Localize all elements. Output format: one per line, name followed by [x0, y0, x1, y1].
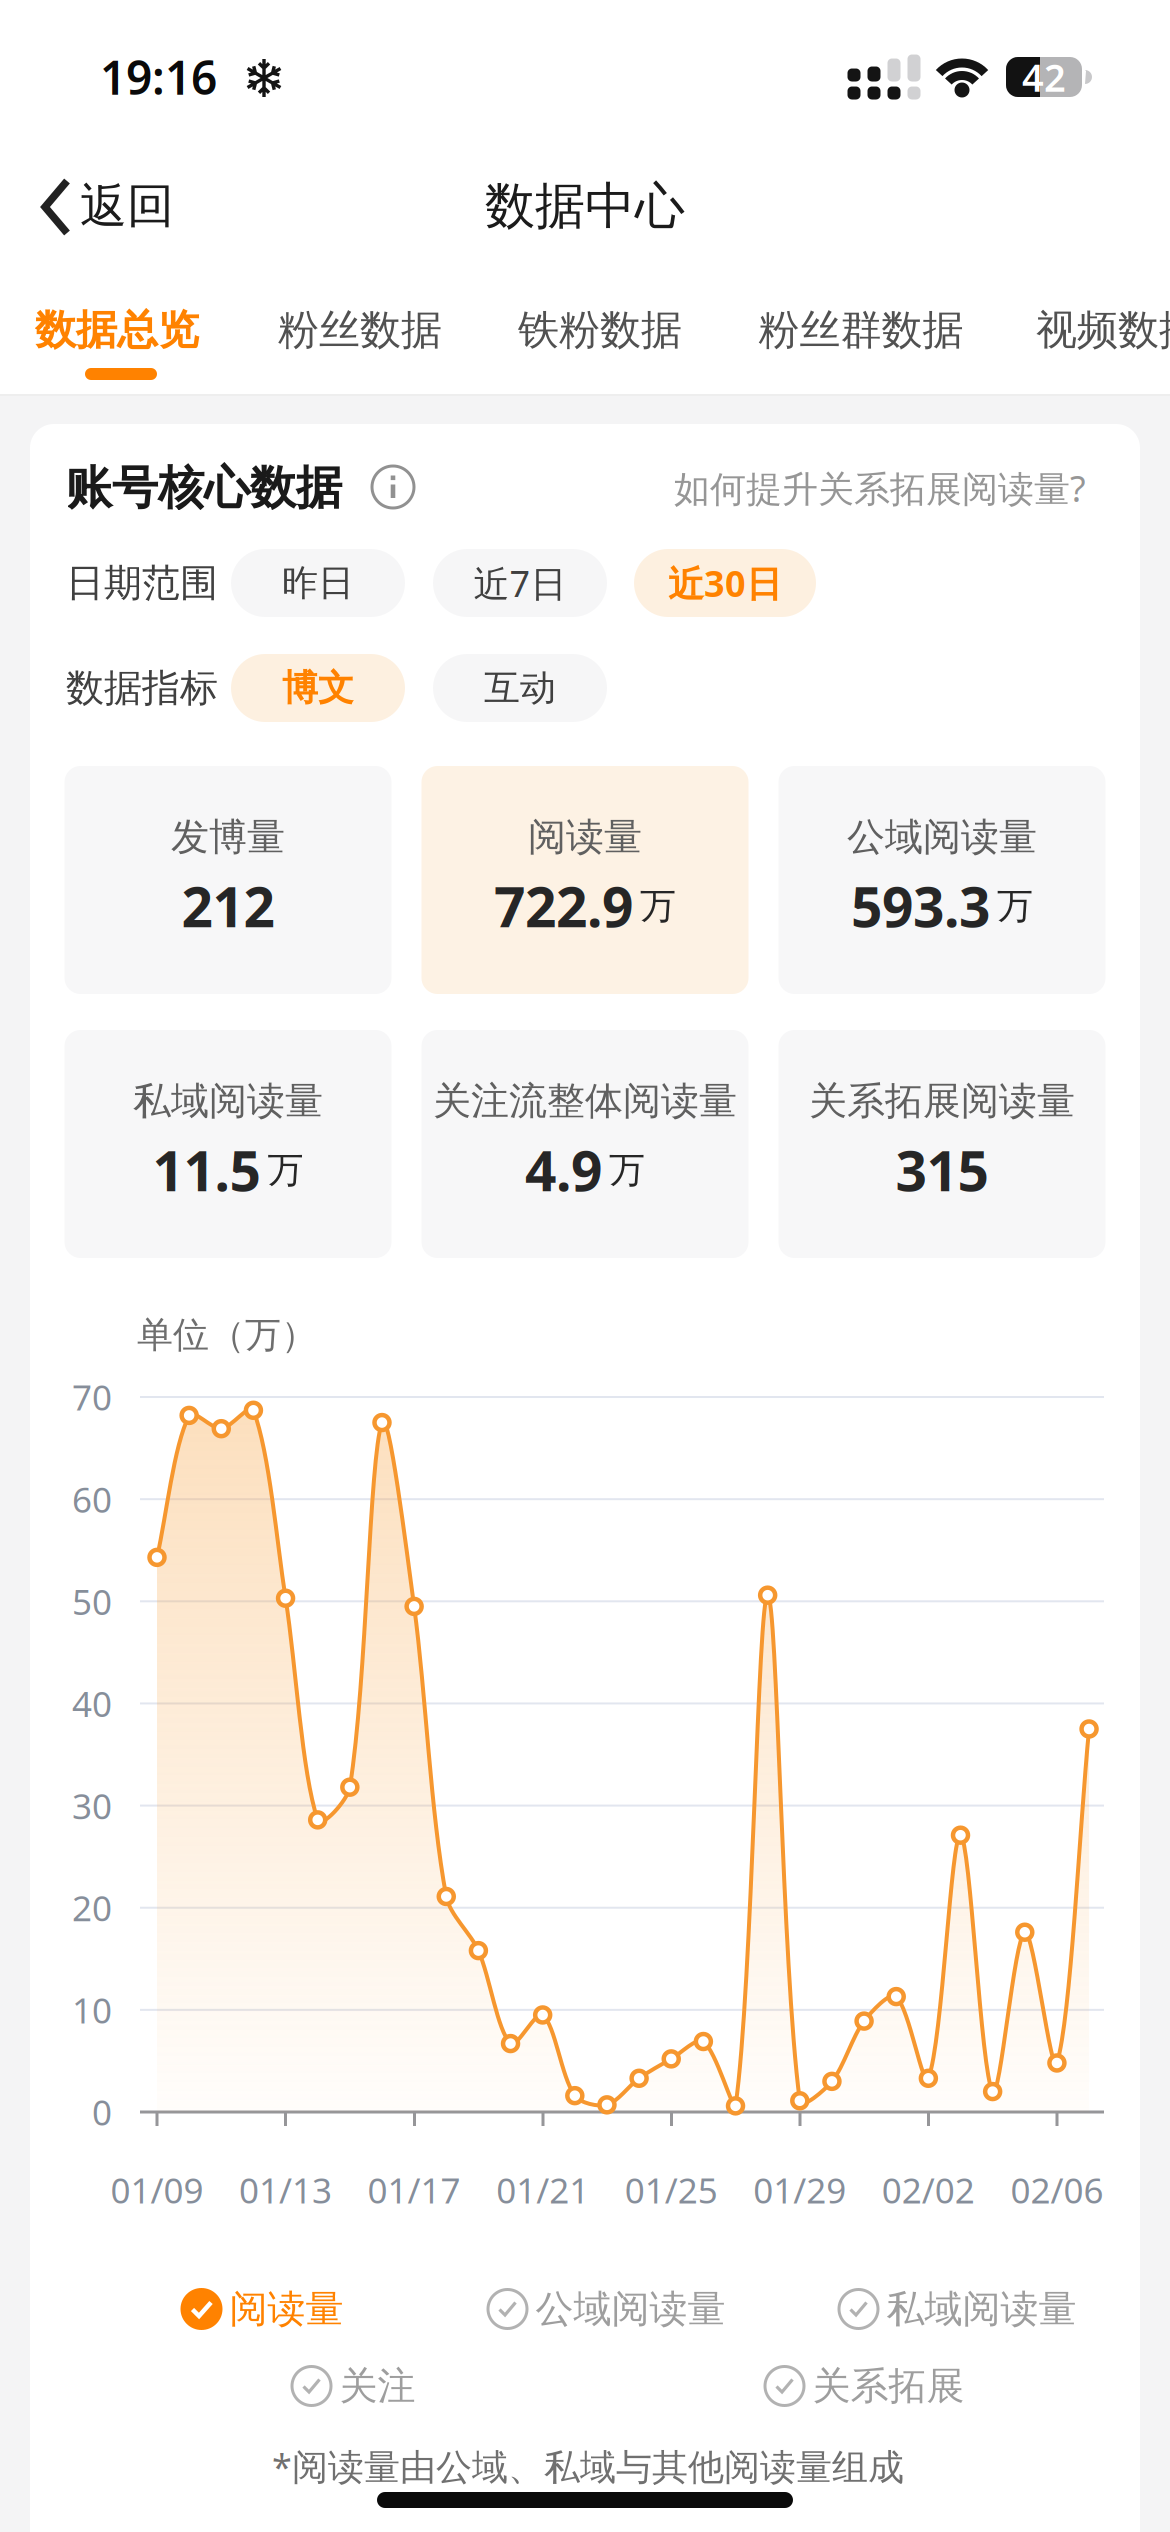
staticText: 近30日	[668, 558, 782, 607]
staticText: 01/13	[239, 2166, 332, 2214]
staticText: 数据中心	[485, 174, 685, 237]
staticText: 阅读量	[528, 813, 642, 861]
staticText: 01/17	[368, 2166, 461, 2214]
staticText: 数据指标	[66, 664, 218, 712]
staticText: 数据总览	[35, 304, 199, 356]
staticText: 返回	[80, 176, 174, 236]
staticText: 粉丝数据	[278, 304, 442, 356]
staticText: 0	[92, 2088, 112, 2136]
staticText: 02/02	[882, 2166, 975, 2214]
staticText: 公域阅读量	[535, 2285, 725, 2333]
staticText: 30	[72, 1782, 112, 1829]
staticText: 粉丝群数据	[758, 304, 963, 356]
staticText: 如何提升关系拓展阅读量?	[674, 463, 1086, 512]
staticText: 01/21	[496, 2166, 589, 2214]
staticText: 万	[267, 1147, 303, 1193]
staticText: 关系拓展阅读量	[809, 1077, 1075, 1125]
staticText: 4.9	[525, 1132, 602, 1207]
staticText: 公域阅读量	[847, 813, 1037, 861]
staticText: 60	[72, 1475, 112, 1523]
staticText: 铁粉数据	[518, 304, 682, 356]
staticText: 关注流整体阅读量	[433, 1077, 737, 1125]
staticText: 593.3	[851, 868, 990, 943]
staticText: 昨日	[282, 560, 354, 606]
staticText: 50	[72, 1577, 112, 1625]
staticText: 01/09	[110, 2166, 203, 2214]
staticText: 万	[609, 1147, 645, 1193]
staticText: 关系拓展	[812, 2362, 964, 2410]
staticText: 视频数据	[1036, 304, 1170, 356]
staticText: 01/29	[753, 2166, 846, 2214]
staticText: 02/06	[1010, 2166, 1103, 2214]
staticText: 722.9	[494, 868, 633, 943]
staticText: 11.5	[152, 1132, 260, 1207]
staticText: 01/25	[625, 2166, 718, 2214]
staticText: 42	[1022, 51, 1066, 103]
staticText: 万	[640, 883, 676, 929]
staticText: 近7日	[473, 558, 566, 607]
staticText: 私域阅读量	[886, 2285, 1076, 2333]
staticText: 发博量	[171, 813, 285, 861]
staticText: 315	[895, 1132, 988, 1207]
staticText: 40	[72, 1680, 112, 1727]
staticText: 账号核心数据	[66, 459, 342, 517]
staticText: 10	[72, 1986, 112, 2034]
staticText: 私域阅读量	[133, 1077, 323, 1125]
staticText: 日期范围	[66, 559, 218, 607]
staticText: 20	[72, 1884, 112, 1932]
staticText: 212	[181, 868, 274, 943]
staticText: 博文	[282, 665, 354, 711]
staticText: 19:16	[100, 46, 217, 108]
staticText: 互动	[484, 665, 556, 711]
staticText: 阅读量	[229, 2285, 343, 2333]
staticText: 70	[72, 1373, 112, 1421]
staticText: 万	[997, 883, 1033, 929]
staticText: *阅读量由公域、私域与其他阅读量组成	[272, 2441, 904, 2490]
staticText: 关注	[339, 2362, 415, 2410]
staticText: 单位（万）	[137, 1312, 317, 1358]
